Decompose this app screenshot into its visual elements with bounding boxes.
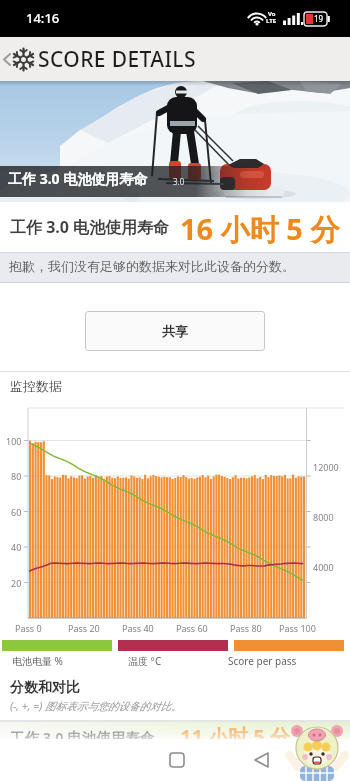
staticText: SCORE DETAILS [38, 45, 196, 74]
staticText: Pass 100 [279, 622, 316, 634]
button[interactable]: 共享 [85, 311, 265, 351]
staticText: Vo [268, 10, 276, 18]
staticText: 16 小时 5 分 [180, 209, 340, 249]
staticText: 工作 3.0 电池使用寿命 [10, 727, 155, 747]
staticText: Pass 0 [15, 622, 42, 634]
staticText: 共享 [162, 323, 188, 339]
staticText: 60 [11, 506, 22, 518]
staticText: Pass 20 [68, 622, 100, 634]
staticText: 12000 [313, 461, 339, 473]
staticText: 监控数据 [10, 378, 62, 394]
staticText: 抱歉，我们没有足够的数据来对比此设备的分数。 [9, 258, 295, 274]
staticText: 温度 °C [128, 654, 162, 668]
staticText: 14:16 [26, 9, 60, 27]
button[interactable]: 工作 3.0 电池使用寿命 [0, 722, 350, 781]
staticText: (-, +, =) 图标表示与您的设备的对比。 [10, 699, 182, 713]
staticText: 20 [11, 577, 22, 589]
staticText: 电池电量 % [12, 654, 63, 668]
staticText: LTE [266, 17, 277, 25]
staticText: 80 [11, 470, 22, 482]
staticText: 40 [11, 541, 22, 553]
button[interactable]: 工作 3.0 电池使用寿命 [0, 202, 350, 252]
staticText: 3.0 [173, 176, 185, 187]
staticText: Pass 60 [176, 622, 208, 634]
staticText: 100 [6, 435, 22, 447]
staticText: Pass 80 [230, 622, 262, 634]
button[interactable] [0, 37, 18, 81]
staticText: Score per pass [228, 654, 297, 668]
staticText: 工作 3.0 电池使用寿命 [10, 216, 170, 238]
staticText: 工作 3.0 电池使用寿命 [8, 169, 148, 188]
button[interactable] [157, 739, 197, 781]
staticText: 11 小时 5 分 [180, 723, 290, 750]
staticText: 8000 [313, 511, 334, 523]
button[interactable] [242, 739, 282, 781]
staticText: 19 [314, 13, 324, 24]
staticText: 分数和对比 [10, 679, 80, 697]
staticText: 4000 [313, 561, 334, 573]
staticText: Pass 40 [122, 622, 154, 634]
